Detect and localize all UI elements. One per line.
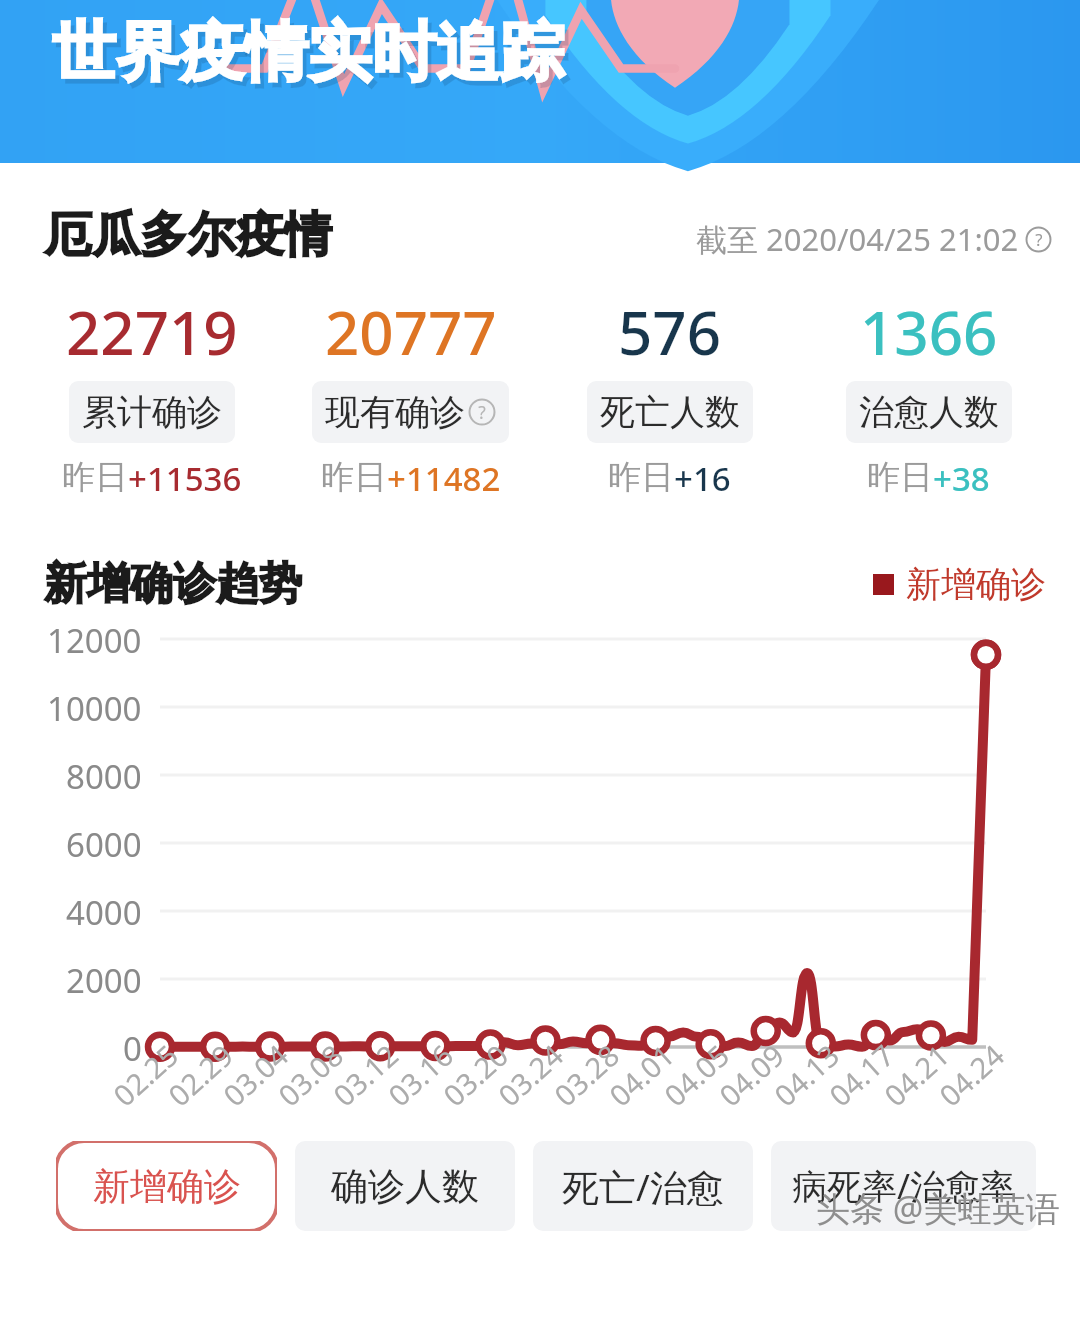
staticText: 04.17 [821,1035,902,1114]
staticText: 03.08 [270,1035,351,1114]
staticText: 22719 [66,291,238,373]
button[interactable]: 22719 [22,291,281,501]
staticText: 03.24 [490,1035,571,1114]
button[interactable]: 新增确诊 [873,562,1046,606]
staticText: ? [478,400,486,424]
other: Help [1025,226,1052,253]
staticText: 死亡人数 [600,390,740,434]
staticText: 新增确诊趋势 [44,557,302,611]
staticText: 昨日 [62,456,128,498]
staticText: 头条 @美蛙英语 [816,1185,1060,1231]
staticText: +16 [674,456,731,501]
staticText: 04.09 [711,1035,792,1114]
staticText: 新增确诊 [93,1163,241,1210]
staticText: 病死率/治愈率 [792,1162,1016,1210]
staticText: 12000 [47,618,142,663]
button[interactable]: 确诊人数 [295,1141,515,1231]
staticText: 截至 2020/04/25 21:02 [696,218,1019,260]
staticText: 8000 [66,754,142,799]
staticText: 新增确诊 [906,562,1046,606]
staticText: 03.04 [215,1035,296,1114]
button[interactable]: 截至 2020/04/25 21:02 [696,218,1052,265]
staticText: 4000 [66,890,142,935]
staticText: 世界疫情实时追踪 [52,12,564,93]
staticText: 厄瓜多尔疫情 [44,205,332,265]
button[interactable]: 20777 [281,291,540,501]
staticText: 累计确诊 [82,390,222,434]
staticText: 04.01 [601,1035,682,1114]
staticText: ? [1035,228,1043,251]
staticText: 6000 [66,822,142,867]
staticText: 昨日 [867,456,933,498]
staticText: 确诊人数 [331,1163,479,1210]
staticText: 03.28 [546,1035,627,1114]
button[interactable]: 576 [540,291,799,501]
button[interactable]: 1366 [799,291,1058,501]
staticText: 昨日 [608,456,674,498]
staticText: 02.29 [160,1035,241,1114]
staticText: 现有确诊 [325,390,465,434]
staticText: 04.21 [876,1035,957,1114]
staticText: 02.25 [105,1035,186,1114]
staticText: 04.13 [766,1035,847,1114]
staticText: 03.12 [325,1035,406,1114]
staticText: 治愈人数 [859,390,999,434]
staticText: 昨日 [321,456,387,498]
staticText: +11536 [128,456,242,501]
staticText: 死亡/治愈 [562,1161,724,1212]
staticText: 03.20 [435,1035,516,1114]
button[interactable]: 死亡/治愈 [533,1141,753,1231]
staticText: +38 [933,456,990,501]
staticText: 0 [123,1026,142,1071]
staticText: 20777 [325,291,497,373]
staticText: 1366 [860,291,998,373]
button[interactable]: 病死率/治愈率 [771,1141,1036,1231]
button[interactable]: 新增确诊 [56,1141,277,1231]
other: Help [468,398,496,426]
staticText: 世界疫情实时追踪 [56,17,568,98]
staticText: 2000 [66,958,142,1003]
staticText: 04.05 [656,1035,737,1114]
staticText: 04.24 [931,1035,1012,1114]
staticText: 576 [618,291,721,373]
staticText: 10000 [47,686,142,731]
staticText: 03.16 [380,1035,461,1114]
staticText: +11482 [387,456,501,501]
